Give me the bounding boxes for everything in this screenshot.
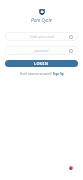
- button[interactable]: Sign Up: [53, 72, 64, 76]
- staticText: Enter your email: [30, 35, 54, 39]
- staticText: Don't have an account?: [20, 72, 53, 76]
- button[interactable]: password: [5, 46, 78, 55]
- button[interactable]: Account: [69, 35, 73, 39]
- staticText: LOGIN: [34, 61, 49, 66]
- button[interactable]: Help: [69, 166, 73, 170]
- button[interactable]: LOGIN: [5, 60, 78, 67]
- staticText: password: [34, 49, 49, 53]
- button[interactable]: Enter your email: [5, 32, 78, 41]
- button[interactable]: Show password: [69, 49, 73, 53]
- staticText: Pure Cycle: [31, 17, 52, 23]
